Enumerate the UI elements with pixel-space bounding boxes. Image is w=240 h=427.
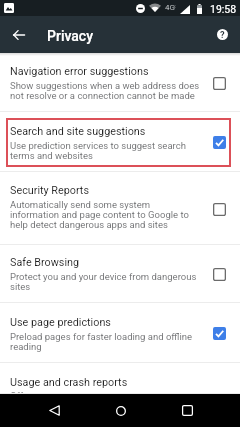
staticText: Search and site suggestions	[10, 126, 146, 138]
button[interactable]: Checked	[208, 322, 230, 344]
button[interactable]: Checked	[208, 131, 230, 153]
staticText: Protect you and your device from dangero…	[10, 272, 200, 292]
staticText: x	[173, 2, 176, 9]
staticText: Use prediction services to suggest searc…	[10, 141, 200, 161]
staticText: 19:58	[210, 3, 237, 15]
button[interactable]: Navigation error suggestions	[0, 53, 240, 112]
staticText: Usage and crash reports	[10, 377, 128, 389]
staticText: Show suggestions when a web address does…	[10, 81, 200, 101]
staticText: Use page predictions	[10, 317, 111, 329]
button[interactable]: Navigate up	[2, 18, 36, 52]
button[interactable]: Security Reports	[0, 172, 240, 245]
button[interactable]: Home	[102, 394, 139, 427]
button[interactable]: Unchecked	[208, 263, 230, 285]
button[interactable]: Help	[206, 34, 240, 68]
staticText: ?	[220, 30, 225, 40]
button[interactable]: Safe Browsing	[0, 245, 240, 303]
button[interactable]: Back	[36, 394, 72, 427]
staticText: Privacy	[47, 28, 94, 44]
button[interactable]: Search and site suggestions	[0, 112, 240, 172]
staticText: 4G	[165, 3, 175, 12]
staticText: Automatically send some system informati…	[10, 200, 200, 230]
button[interactable]: Use page predictions	[0, 303, 240, 363]
staticText: Safe Browsing	[10, 257, 80, 269]
button[interactable]: Usage and crash reports	[0, 363, 240, 394]
staticText: Navigation error suggestions	[10, 66, 149, 78]
button[interactable]: Unchecked	[208, 72, 230, 94]
button[interactable]: Recent apps	[169, 394, 205, 427]
staticText: Preload pages for faster loading and off…	[10, 332, 200, 352]
staticText: Off	[10, 391, 200, 401]
button[interactable]: Unchecked	[208, 198, 230, 220]
staticText: Security Reports	[10, 185, 89, 197]
